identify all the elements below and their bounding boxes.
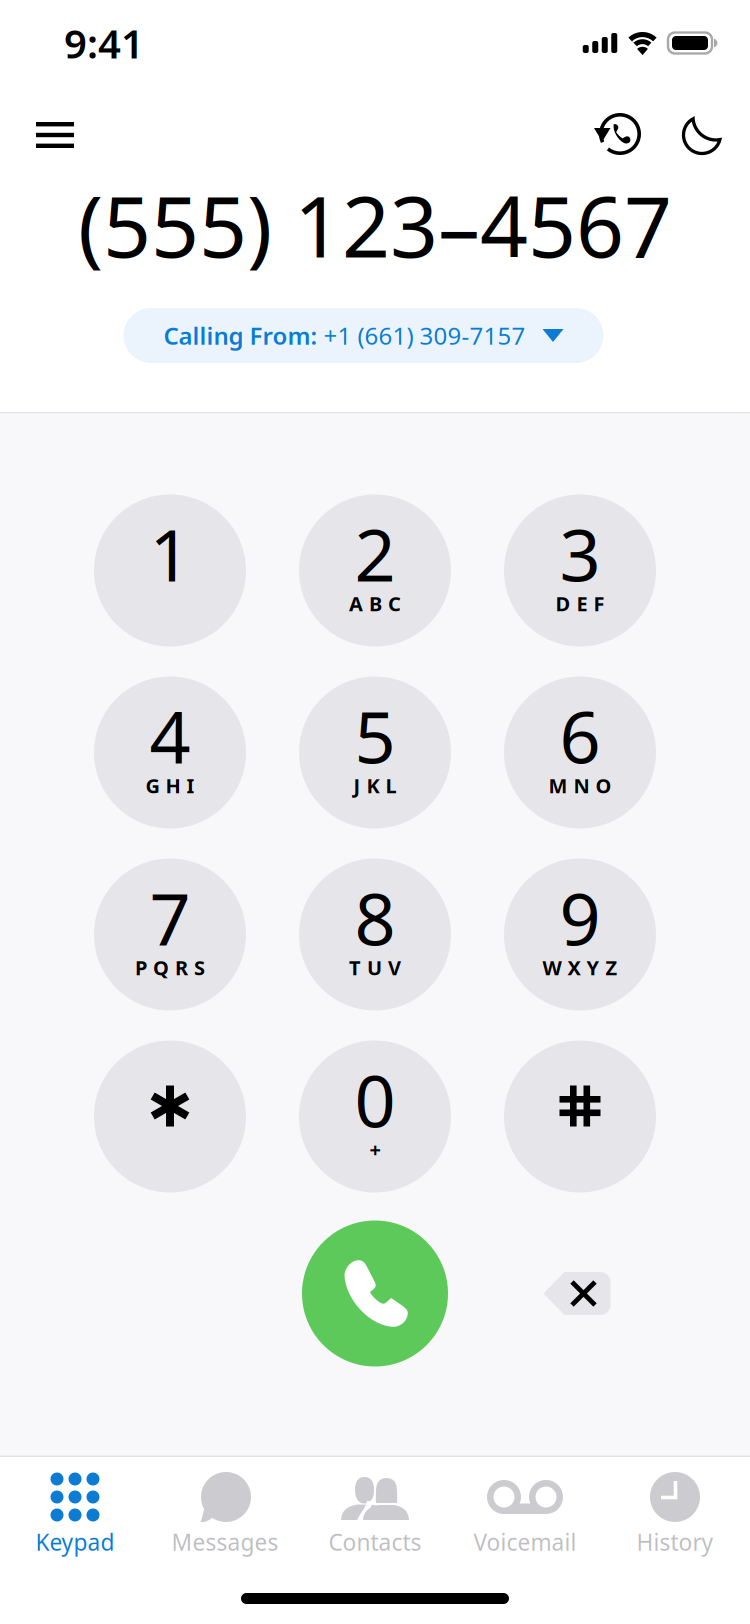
button[interactable]: 3: [504, 494, 656, 646]
button[interactable]: Messages: [150, 1457, 300, 1561]
staticText: PQRS: [135, 954, 205, 981]
button[interactable]: 6: [504, 676, 656, 828]
staticText: GHI: [145, 772, 194, 799]
staticText: History: [636, 1527, 713, 1557]
staticText: Contacts: [328, 1527, 421, 1557]
staticText: MNO: [548, 772, 611, 799]
staticText: WXYZ: [542, 954, 617, 981]
staticText: 1: [149, 506, 190, 601]
staticText: 6: [559, 688, 600, 783]
staticText: 9:41: [64, 16, 144, 69]
button[interactable]: Contacts: [300, 1457, 450, 1561]
button[interactable]: 4: [94, 676, 246, 828]
button[interactable]: Recents: [590, 104, 648, 166]
staticText: 9: [559, 870, 600, 965]
button[interactable]: 9: [504, 858, 656, 1010]
staticText: 0: [354, 1052, 395, 1147]
staticText: +: [369, 1136, 380, 1163]
staticText: +1 (661) 309-7157: [317, 320, 525, 351]
staticText: Calling From:: [163, 320, 317, 351]
staticText: ABC: [349, 590, 401, 617]
button[interactable]: [504, 1040, 656, 1192]
staticText: Messages: [171, 1527, 278, 1557]
staticText: 7: [149, 870, 190, 965]
button[interactable]: 8: [299, 858, 451, 1010]
button[interactable]: Voicemail: [450, 1457, 600, 1561]
button[interactable]: 1: [94, 494, 246, 646]
button[interactable]: 0: [299, 1040, 451, 1192]
staticText: 2: [354, 506, 395, 601]
staticText: (555) 123–4567: [78, 169, 672, 281]
staticText: 5: [354, 688, 395, 783]
staticText: 4: [149, 688, 190, 783]
staticText: DEF: [555, 590, 604, 617]
button[interactable]: Calling From:: [123, 308, 603, 363]
button[interactable]: Keypad: [0, 1457, 150, 1561]
button[interactable]: History: [600, 1457, 750, 1561]
staticText: Voicemail: [473, 1527, 576, 1557]
button[interactable]: 7: [94, 858, 246, 1010]
button[interactable]: [94, 1040, 246, 1192]
button[interactable]: 2: [299, 494, 451, 646]
button[interactable]: Menu: [19, 104, 91, 166]
staticText: Keypad: [35, 1527, 114, 1557]
staticText: 8: [354, 870, 395, 965]
staticText: 3: [559, 506, 600, 601]
staticText: TUV: [349, 954, 401, 981]
staticText: JKL: [353, 772, 396, 799]
button[interactable]: 5: [299, 676, 451, 828]
button[interactable]: Call: [302, 1220, 448, 1366]
button[interactable]: Do Not Disturb: [674, 104, 732, 166]
button[interactable]: Delete: [501, 1220, 653, 1366]
